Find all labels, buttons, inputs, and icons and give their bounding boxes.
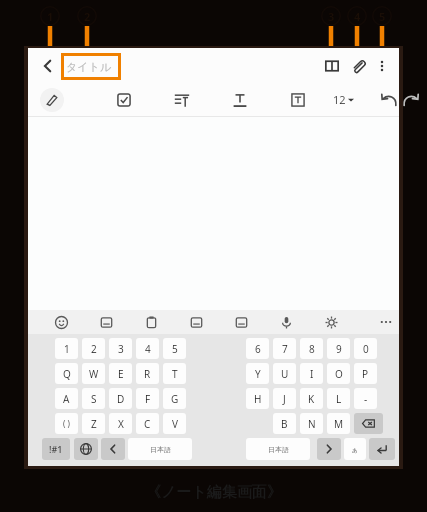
button[interactable]: 言語切替 — [74, 438, 98, 460]
staticText: 5 — [379, 9, 386, 24]
staticText: - — [364, 392, 368, 406]
button[interactable]: Y — [246, 363, 269, 384]
button[interactable]: F — [136, 388, 159, 409]
button[interactable]: 元に戻す — [380, 91, 398, 109]
staticText: I — [310, 367, 314, 381]
button[interactable]: 音声入力 — [276, 312, 296, 332]
button[interactable]: Q — [55, 363, 78, 384]
staticText: 12 — [333, 92, 346, 107]
staticText: M — [334, 417, 344, 431]
button[interactable]: 設定 — [321, 312, 341, 332]
button[interactable]: 手書き — [40, 88, 64, 112]
button[interactable]: ( ) — [55, 413, 78, 434]
button[interactable]: 12 — [333, 92, 354, 107]
staticText: 0 — [363, 342, 369, 356]
staticText: B — [281, 417, 288, 431]
button[interactable]: 手書き入力 — [231, 312, 251, 332]
button[interactable]: R — [136, 363, 159, 384]
button[interactable]: M — [327, 413, 350, 434]
button[interactable]: 4 — [136, 338, 159, 359]
staticText: V — [172, 417, 178, 431]
button[interactable]: 翻訳 — [96, 312, 116, 332]
button[interactable]: T — [163, 363, 186, 384]
staticText: W — [89, 367, 99, 381]
button[interactable]: B — [273, 413, 296, 434]
staticText: 日本語 — [268, 445, 289, 454]
staticText: X — [118, 417, 124, 431]
button[interactable]: I — [300, 363, 323, 384]
staticText: T — [172, 367, 178, 381]
button[interactable]: チェックリスト — [116, 92, 132, 108]
button[interactable]: クリップボード — [141, 312, 161, 332]
button[interactable]: 絵文字 — [51, 312, 71, 332]
staticText: 7 — [282, 342, 288, 356]
staticText: ぁ — [351, 445, 359, 454]
button[interactable]: タイトル — [61, 53, 121, 80]
button[interactable]: D — [109, 388, 132, 409]
button[interactable]: テキスト書式 — [232, 92, 248, 108]
button[interactable]: 6 — [246, 338, 269, 359]
button[interactable]: 箇条書き — [174, 92, 190, 108]
button[interactable]: G — [163, 388, 186, 409]
button[interactable]: 2 — [82, 338, 105, 359]
button[interactable]: K — [300, 388, 323, 409]
staticText: H — [254, 392, 262, 406]
staticText: 2 — [84, 9, 91, 24]
button[interactable]: 8 — [300, 338, 323, 359]
staticText: C — [144, 417, 151, 431]
button[interactable]: 次へ — [317, 438, 341, 460]
button[interactable]: やり直す — [402, 91, 420, 109]
button[interactable]: 3 — [109, 338, 132, 359]
button[interactable]: ブック表示 — [319, 53, 345, 79]
button[interactable]: 変換 — [246, 438, 310, 460]
button[interactable]: 分割キーボード — [186, 312, 206, 332]
button[interactable]: J — [273, 388, 296, 409]
button[interactable]: その他 — [371, 55, 393, 77]
button[interactable]: N — [300, 413, 323, 434]
staticText: 1 — [64, 342, 70, 356]
button[interactable]: 削除 — [354, 413, 383, 434]
button[interactable]: 戻る — [34, 52, 62, 80]
staticText: G — [171, 392, 179, 406]
button[interactable]: U — [273, 363, 296, 384]
button[interactable]: !#1 — [42, 438, 70, 460]
button[interactable]: 0 — [354, 338, 377, 359]
staticText: 《ノート編集画面》 — [146, 483, 282, 502]
button[interactable]: 記号入力 — [344, 438, 366, 460]
button[interactable]: O — [327, 363, 350, 384]
staticText: タイトル — [66, 60, 112, 74]
button[interactable]: X — [109, 413, 132, 434]
staticText: D — [117, 392, 125, 406]
button[interactable]: テキストボックス — [290, 92, 306, 108]
button[interactable]: E — [109, 363, 132, 384]
button[interactable]: 前へ — [101, 438, 125, 460]
button[interactable]: C — [136, 413, 159, 434]
staticText: P — [362, 367, 369, 381]
button[interactable]: W — [82, 363, 105, 384]
button[interactable]: スペース — [128, 438, 192, 460]
button[interactable]: 1 — [55, 338, 78, 359]
staticText: A — [63, 392, 70, 406]
button[interactable]: H — [246, 388, 269, 409]
button[interactable]: 7 — [273, 338, 296, 359]
staticText: J — [283, 392, 286, 406]
button[interactable]: その他 — [376, 312, 396, 332]
button[interactable]: - — [354, 388, 377, 409]
button[interactable]: Z — [82, 413, 105, 434]
staticText: 2 — [91, 342, 97, 356]
button[interactable]: A — [55, 388, 78, 409]
button[interactable]: 5 — [163, 338, 186, 359]
button[interactable]: V — [163, 413, 186, 434]
staticText: O — [335, 367, 343, 381]
staticText: 4 — [145, 342, 151, 356]
staticText: 3 — [118, 342, 124, 356]
button[interactable]: 改行 — [369, 438, 395, 460]
button[interactable]: 添付 — [345, 53, 371, 79]
button[interactable]: S — [82, 388, 105, 409]
staticText: 5 — [172, 342, 178, 356]
staticText: S — [91, 392, 97, 406]
button[interactable]: 9 — [327, 338, 350, 359]
button[interactable]: L — [327, 388, 350, 409]
staticText: Y — [255, 367, 261, 381]
button[interactable]: P — [354, 363, 377, 384]
